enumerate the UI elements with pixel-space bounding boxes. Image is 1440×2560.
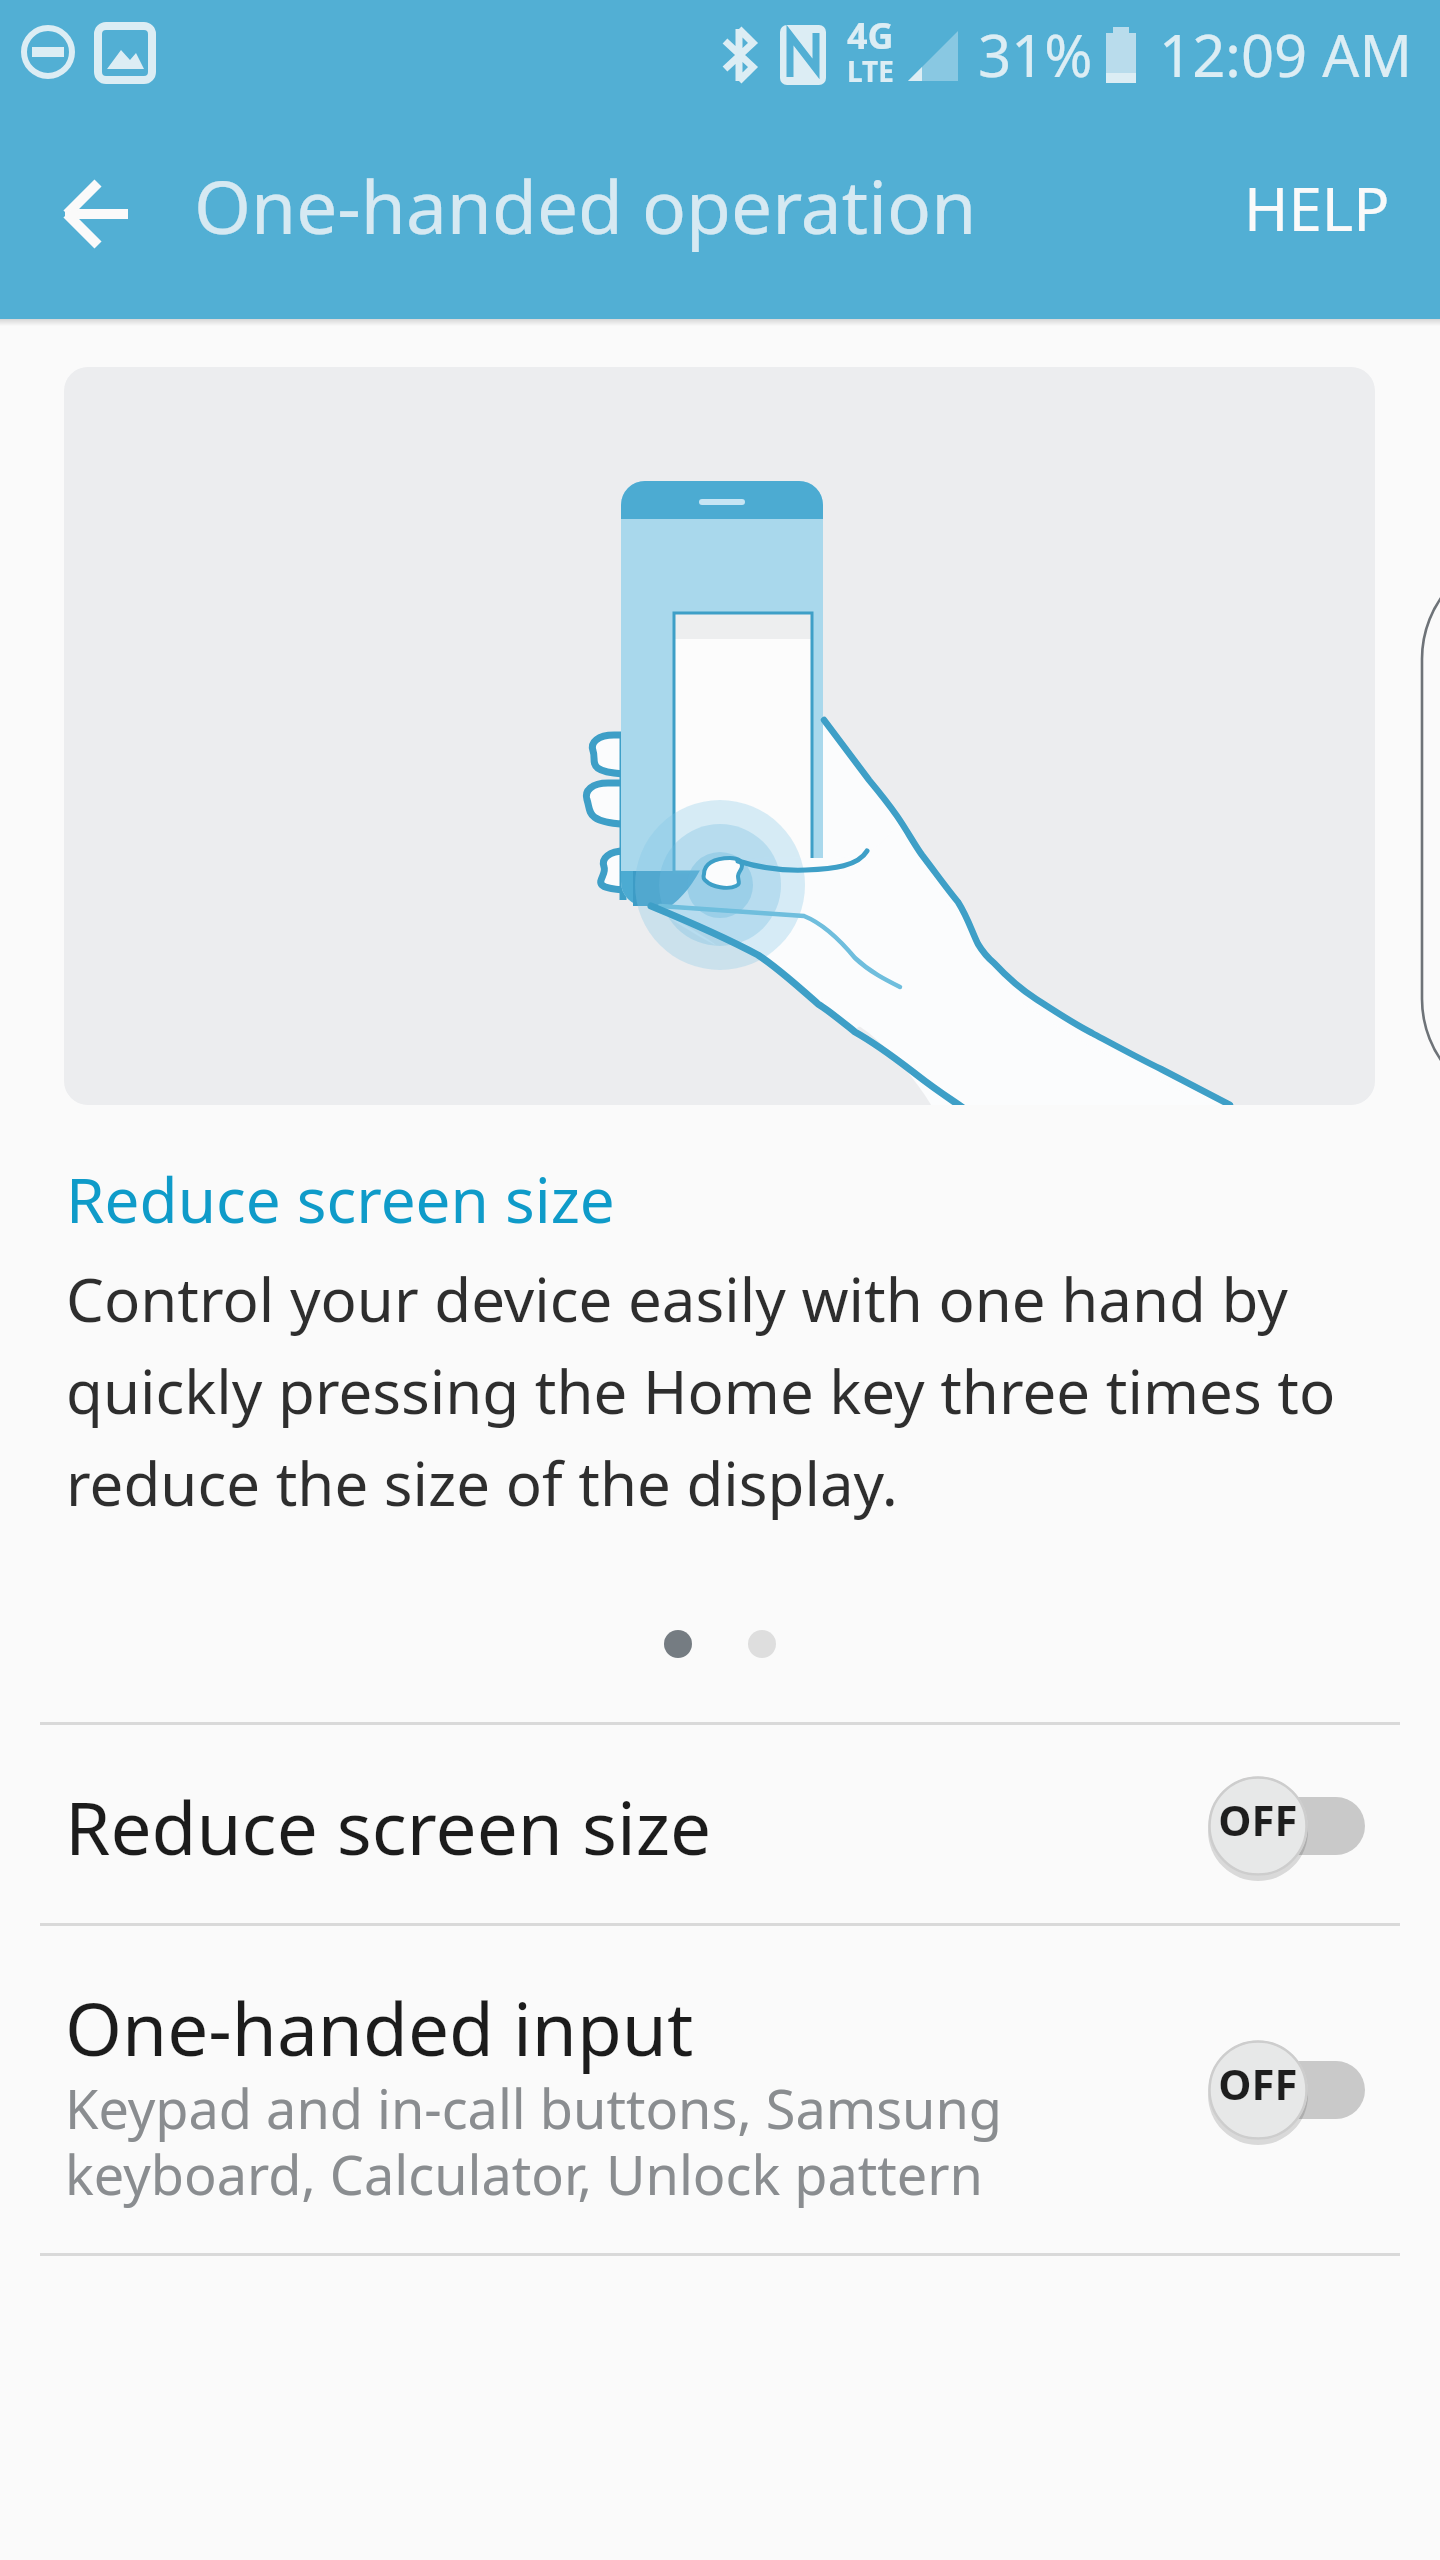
staticText: OFF — [1208, 2055, 1308, 2112]
staticText: OFF — [1208, 1791, 1308, 1848]
button[interactable]: HELP — [1194, 133, 1440, 295]
button[interactable]: Page 1 — [650, 1606, 706, 1684]
staticText: LTE — [847, 52, 894, 90]
button[interactable]: Page 2 — [734, 1606, 790, 1684]
button[interactable]: Off — [1174, 1761, 1374, 1891]
staticText: 31% — [978, 15, 1093, 94]
staticText: Control your device easily with one hand… — [66, 1258, 1396, 1524]
staticText: One-handed input — [65, 1978, 694, 2077]
staticText: HELP — [1244, 167, 1390, 249]
button[interactable]: Off — [1174, 2025, 1374, 2155]
button[interactable]: Reduce screen size preview — [64, 367, 1375, 1105]
staticText: Reduce screen size — [66, 1157, 615, 1241]
staticText: 4G — [847, 11, 894, 60]
staticText: One-handed operation — [194, 156, 977, 255]
button[interactable]: One-handed input — [0, 1926, 1440, 2253]
staticText: Keypad and in-call buttons, Samsung keyb… — [65, 2071, 1075, 2211]
button[interactable]: Reduce screen size — [66, 1157, 615, 1241]
button[interactable]: Reduce screen size — [0, 1729, 1440, 1923]
button[interactable]: Navigate up — [16, 134, 176, 294]
staticText: Reduce screen size — [65, 1777, 712, 1876]
staticText: 12:09 AM — [1159, 15, 1412, 94]
